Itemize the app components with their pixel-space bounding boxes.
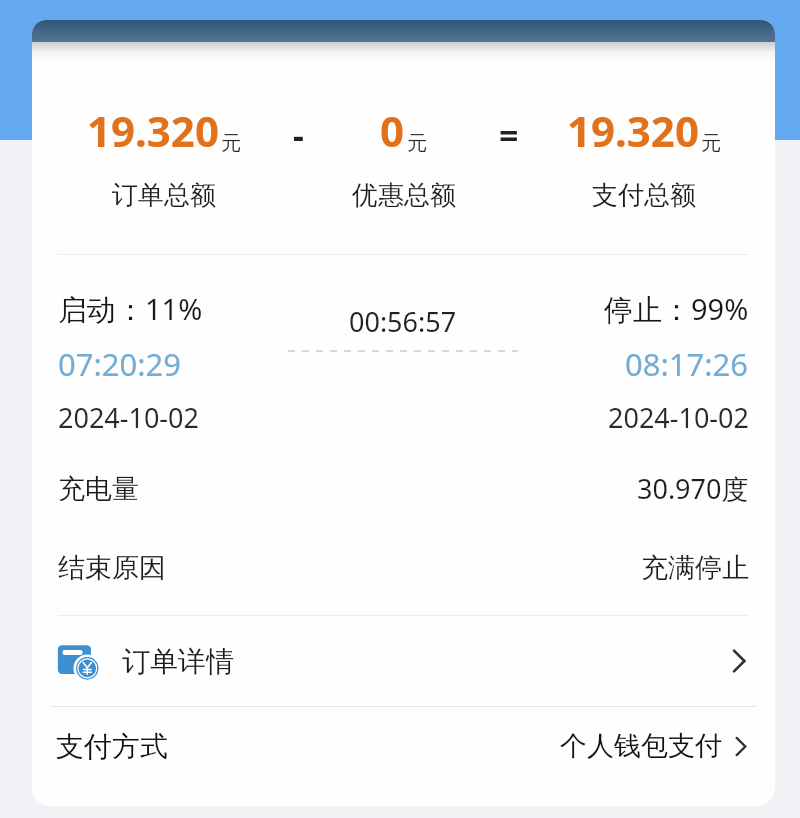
- staticText: =: [499, 112, 519, 158]
- staticText: 充电量: [58, 472, 139, 506]
- staticText: 优惠总额: [352, 179, 456, 212]
- staticText: 元: [221, 131, 241, 156]
- staticText: 0: [380, 102, 405, 159]
- button[interactable]: 支付方式: [32, 707, 775, 785]
- staticText: 支付总额: [592, 179, 696, 212]
- staticText: 07:20:29: [58, 343, 182, 385]
- staticText: 2024-10-02: [608, 399, 749, 436]
- staticText: 结束原因: [58, 551, 166, 585]
- staticText: 支付方式: [56, 729, 168, 764]
- staticText: 19.320: [87, 102, 219, 159]
- other: Order details: [56, 638, 102, 684]
- staticText: 30.970度: [637, 470, 749, 507]
- staticText: 启动：11%: [58, 289, 203, 329]
- staticText: 订单详情: [122, 644, 234, 679]
- staticText: 个人钱包支付: [560, 729, 722, 763]
- staticText: 停止：99%: [604, 289, 749, 329]
- staticText: 订单总额: [112, 179, 216, 212]
- staticText: 元: [701, 131, 721, 156]
- staticText: 19.320: [567, 102, 699, 159]
- staticText: 元: [407, 131, 427, 156]
- staticText: 2024-10-02: [58, 399, 199, 436]
- button[interactable]: Order details: [32, 616, 775, 706]
- staticText: 08:17:26: [625, 343, 749, 385]
- staticText: -: [293, 112, 304, 158]
- staticText: 00:56:57: [349, 303, 457, 340]
- staticText: 充满停止: [641, 551, 749, 585]
